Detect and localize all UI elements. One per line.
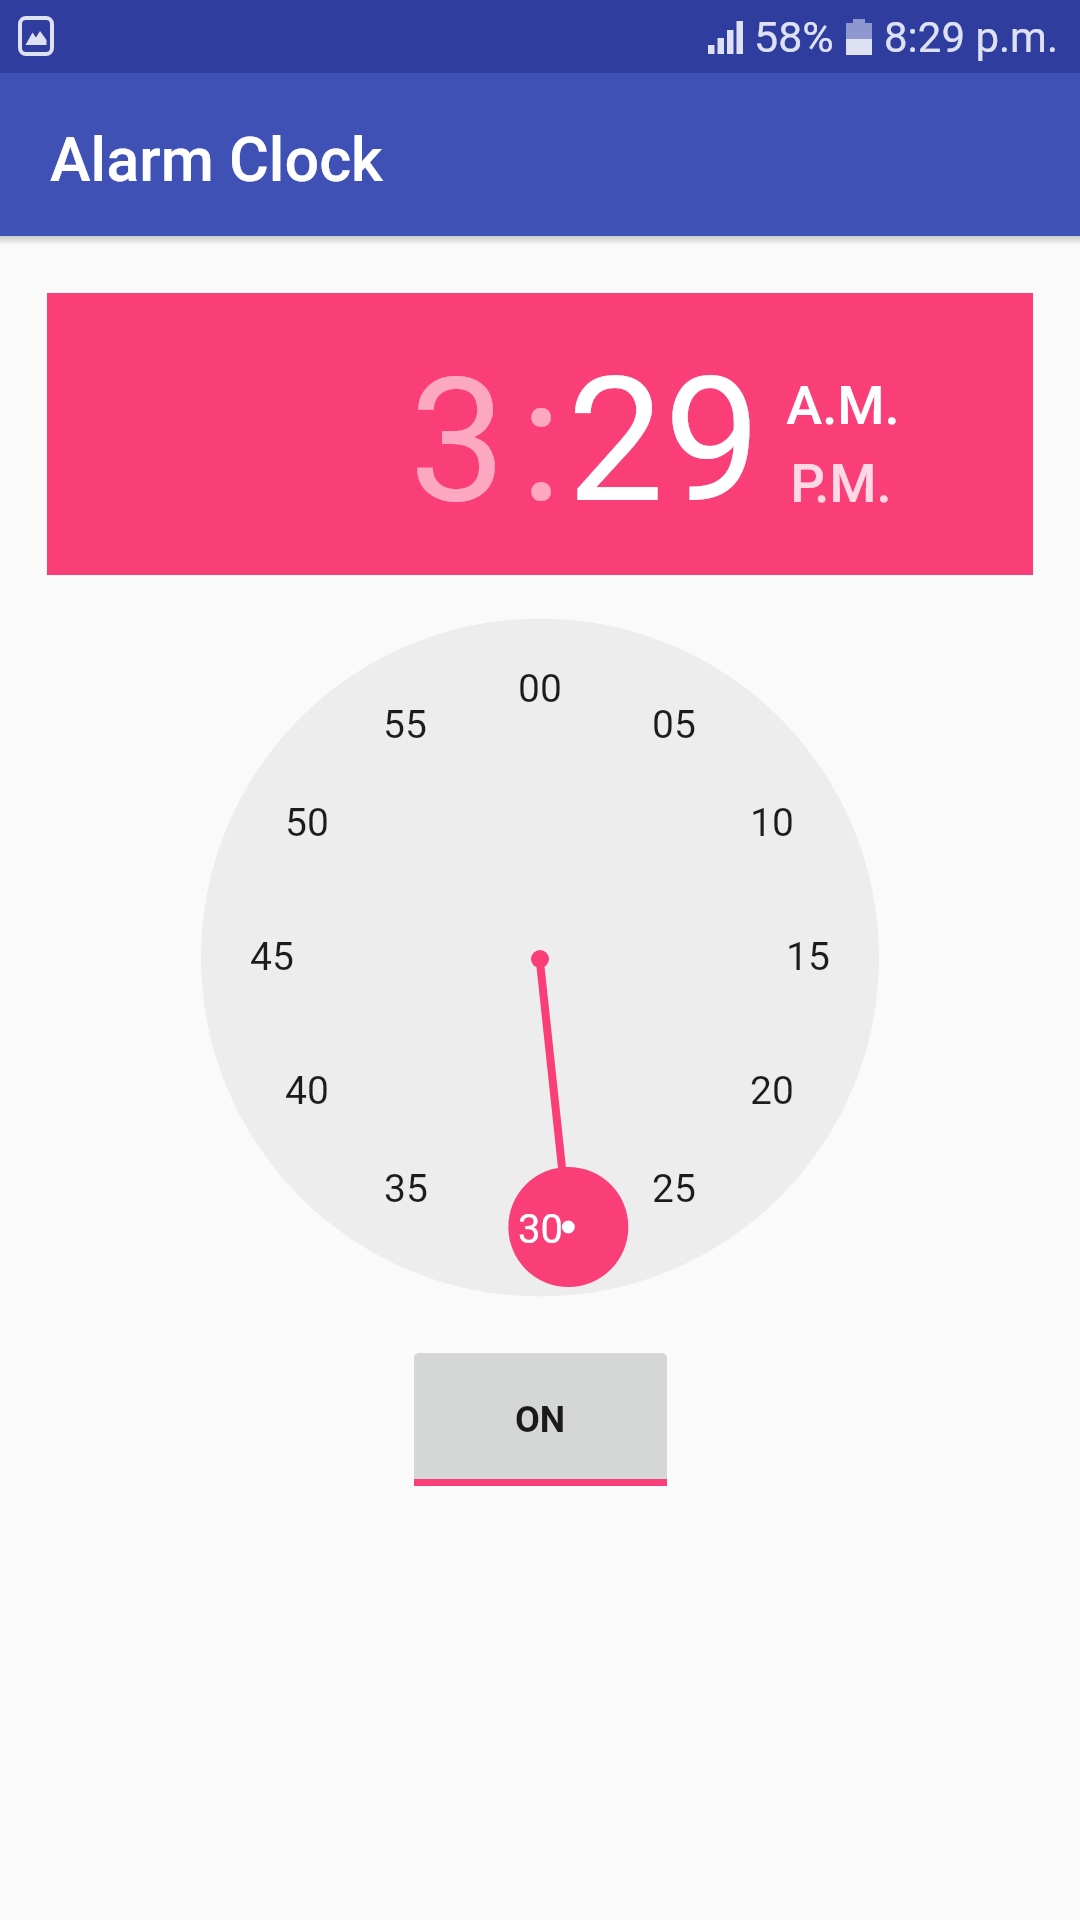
button[interactable]: 3 xyxy=(357,321,557,561)
staticText: 8:29 p.m. xyxy=(884,13,1058,62)
staticText: 05 xyxy=(652,702,696,748)
staticText: 3 xyxy=(409,340,506,542)
button[interactable]: 29 xyxy=(504,321,824,561)
staticText: 29 xyxy=(567,340,761,542)
staticText: : xyxy=(520,340,562,542)
staticText: 50 xyxy=(285,800,329,846)
staticText: 40 xyxy=(285,1068,329,1114)
staticText: 25 xyxy=(652,1166,696,1212)
staticText: 55 xyxy=(383,702,427,748)
staticText: A.M. xyxy=(786,374,900,437)
staticText: ON xyxy=(515,1399,566,1441)
button[interactable]: A.M. xyxy=(758,373,928,437)
staticText: 45 xyxy=(250,934,294,980)
staticText: Alarm Clock xyxy=(50,124,383,195)
staticText: P.M. xyxy=(790,452,892,515)
button[interactable] xyxy=(201,618,879,1296)
staticText: 00 xyxy=(518,666,562,712)
staticText: 10 xyxy=(750,800,794,846)
button[interactable]: P.M. xyxy=(756,451,926,515)
staticText: 35 xyxy=(384,1166,428,1212)
button[interactable]: ON xyxy=(414,1353,667,1486)
staticText: 20 xyxy=(750,1068,794,1114)
staticText: 58% xyxy=(754,12,834,62)
staticText: 30 xyxy=(518,1206,563,1253)
staticText: 15 xyxy=(786,934,830,980)
